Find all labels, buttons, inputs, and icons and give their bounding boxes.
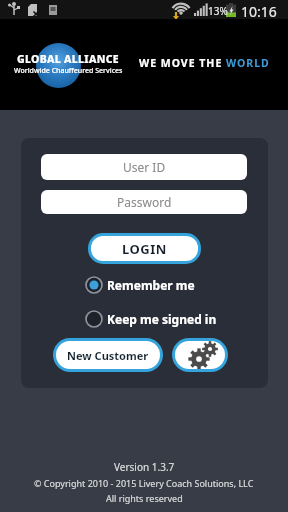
staticText: © Copyright 2010 - 2015 Livery Coach Sol…	[34, 477, 254, 489]
staticText: 10:16	[241, 2, 277, 21]
button[interactable]: LOGIN	[91, 236, 198, 261]
button[interactable]: New Customer	[56, 341, 160, 369]
staticText: New Customer	[67, 348, 149, 363]
staticText: WE MOVE THE WORLD	[139, 56, 270, 70]
button[interactable]: Keep me signed in	[85, 310, 217, 328]
button[interactable]: Remember me	[85, 276, 195, 294]
staticText: User ID	[123, 159, 166, 175]
button[interactable]	[175, 341, 225, 369]
staticText: All rights reserved	[106, 492, 183, 504]
button[interactable]: User ID	[41, 154, 247, 180]
staticText: Password	[117, 194, 172, 210]
staticText: GLOBAL ALLIANCE	[17, 52, 119, 66]
staticText: Keep me signed in	[107, 311, 217, 327]
staticText: Remember me	[107, 277, 195, 293]
staticText: LOGIN	[122, 240, 167, 258]
staticText: Version 1.3.7	[114, 460, 175, 474]
button[interactable]: Password	[41, 190, 247, 214]
staticText: 13%	[208, 4, 228, 18]
staticText: Worldwide Chauffeured Services	[14, 66, 123, 76]
